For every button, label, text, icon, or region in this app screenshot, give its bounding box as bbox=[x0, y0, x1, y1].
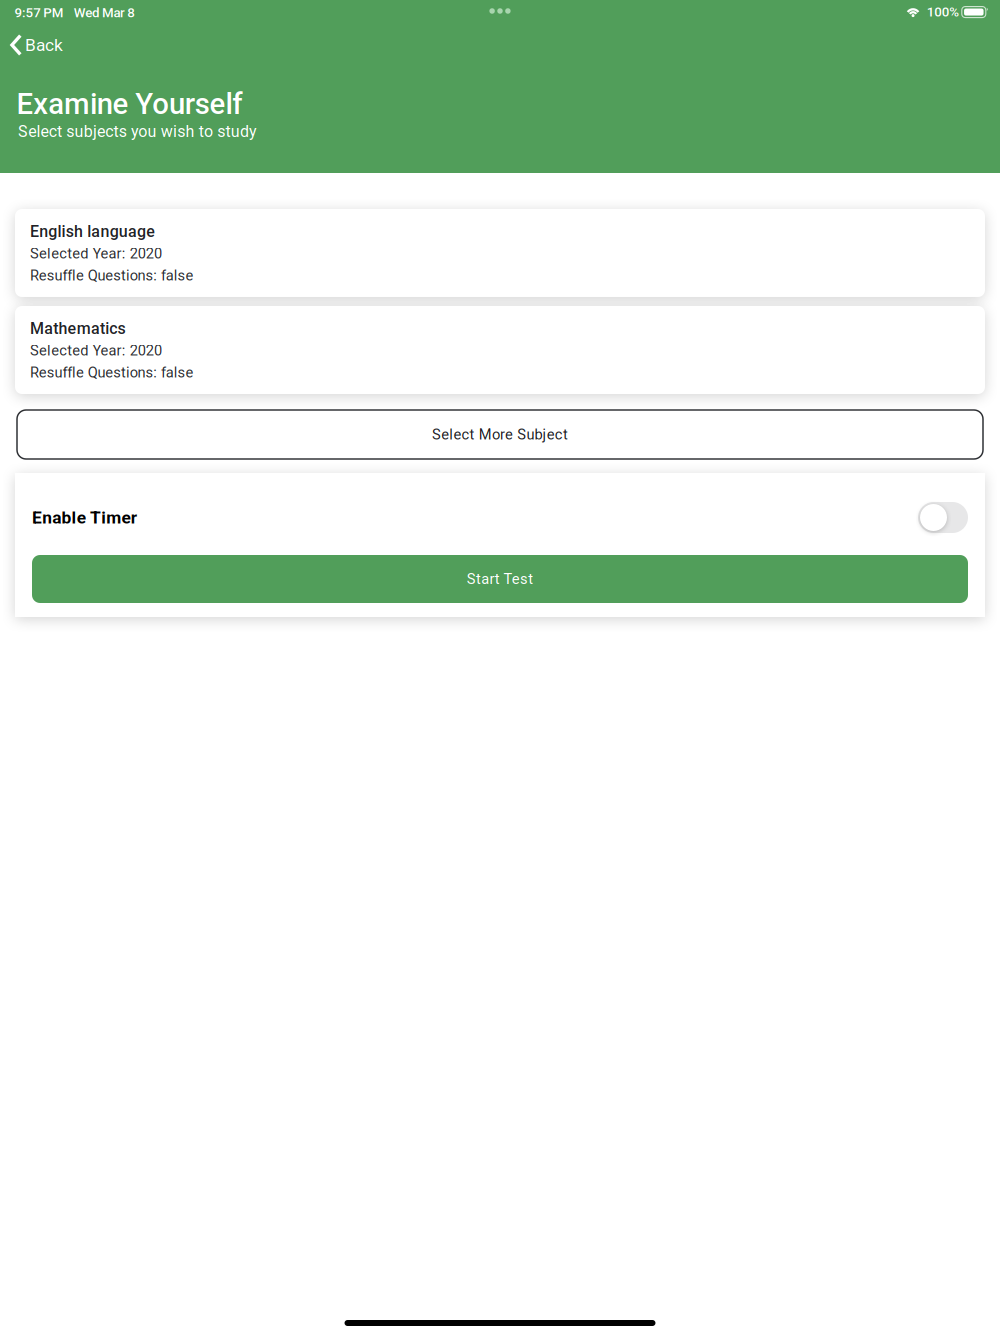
staticText: Examine Yourself bbox=[16, 87, 242, 121]
button[interactable]: Select More Subject bbox=[17, 410, 983, 459]
staticText: Select subjects you wish to study bbox=[18, 122, 257, 141]
staticText: 100% bbox=[927, 4, 959, 20]
staticText: Select More Subject bbox=[432, 426, 568, 443]
staticText: Back bbox=[25, 35, 63, 55]
button[interactable]: Enable Timer bbox=[918, 502, 968, 533]
staticText: English language bbox=[30, 222, 155, 241]
staticText: 9:57 PM bbox=[14, 5, 64, 20]
staticText: Resuffle Questions: false bbox=[30, 364, 193, 381]
staticText: Start Test bbox=[467, 570, 533, 588]
staticText: Enable Timer bbox=[32, 507, 137, 528]
staticText: Selected Year: 2020 bbox=[30, 245, 162, 262]
button[interactable]: Start Test bbox=[32, 555, 968, 603]
staticText: Selected Year: 2020 bbox=[30, 342, 162, 359]
staticText: Wed Mar 8 bbox=[74, 5, 135, 20]
staticText: Mathematics bbox=[30, 319, 125, 338]
button[interactable]: Mathematics bbox=[15, 306, 985, 394]
staticText: Resuffle Questions: false bbox=[30, 267, 193, 284]
button[interactable]: Back bbox=[0, 24, 75, 59]
button[interactable]: English language bbox=[15, 209, 985, 297]
